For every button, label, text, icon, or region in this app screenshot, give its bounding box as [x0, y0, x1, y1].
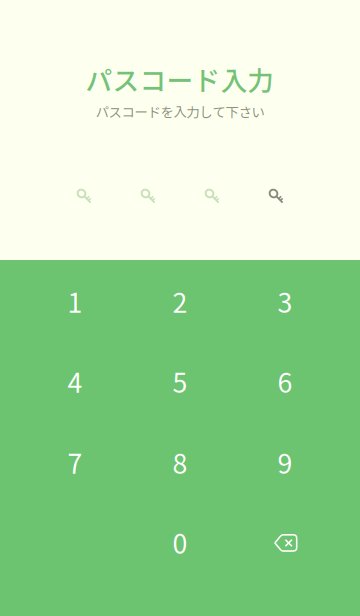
button[interactable]: 7: [15, 422, 135, 502]
button[interactable]: Delete: [226, 503, 346, 583]
staticText: 0: [172, 523, 187, 561]
button[interactable]: 4: [15, 341, 135, 421]
staticText: 8: [172, 443, 187, 481]
staticText: パスコード入力: [85, 60, 274, 98]
staticText: 7: [67, 443, 82, 481]
button[interactable]: 0: [120, 502, 240, 582]
button[interactable]: 5: [120, 341, 240, 421]
staticText: 5: [172, 362, 187, 400]
staticText: 4: [67, 362, 82, 400]
staticText: 2: [172, 282, 187, 320]
button[interactable]: 9: [225, 422, 345, 502]
button[interactable]: 8: [120, 422, 240, 502]
button[interactable]: 2: [120, 261, 240, 341]
staticText: 6: [277, 362, 292, 400]
staticText: 3: [277, 282, 292, 320]
button[interactable]: 3: [225, 261, 345, 341]
staticText: 9: [277, 443, 292, 481]
staticText: 1: [67, 282, 82, 320]
button[interactable]: 6: [225, 341, 345, 421]
staticText: パスコードを入力して下さい: [95, 102, 264, 121]
button[interactable]: 1: [15, 261, 135, 341]
